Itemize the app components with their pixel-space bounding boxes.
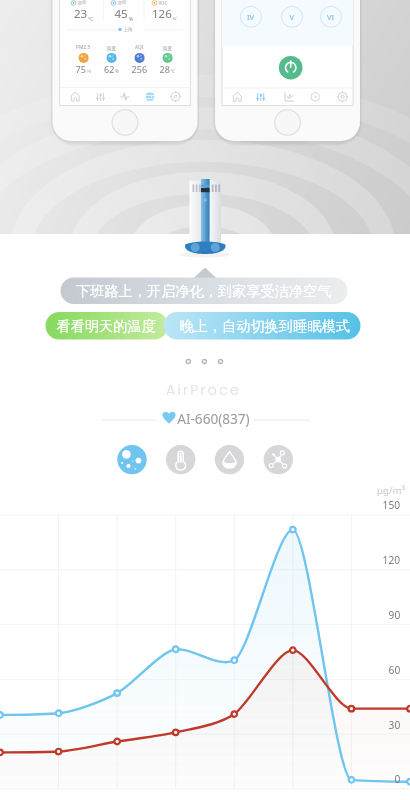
button[interactable]: VOC bbox=[263, 444, 295, 476]
button[interactable]: Temperature bbox=[166, 444, 198, 476]
button[interactable]: PM2.5 bbox=[117, 444, 149, 476]
button[interactable]: Humidity bbox=[215, 444, 247, 476]
